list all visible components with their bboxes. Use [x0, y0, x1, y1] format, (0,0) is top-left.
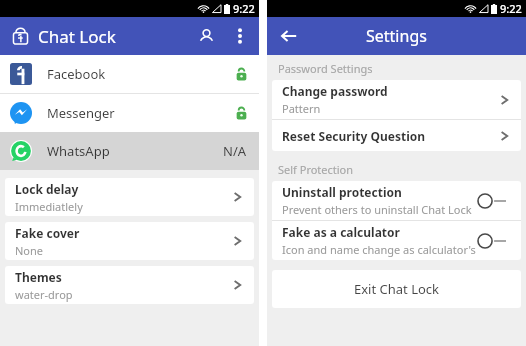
- staticText: Facebook: [47, 65, 106, 83]
- button[interactable]: Uninstall protection: [272, 181, 521, 220]
- staticText: Lock delay: [15, 181, 79, 197]
- button[interactable]: Back: [275, 22, 303, 50]
- button[interactable]: Facebook: [0, 55, 259, 93]
- button[interactable]: Exit Chat Lock: [272, 270, 521, 308]
- staticText: Immediatlely: [15, 199, 83, 214]
- staticText: Fake as a calculator: [282, 224, 400, 240]
- staticText: Uninstall protection: [282, 184, 402, 200]
- button[interactable]: Chat Lock: [9, 25, 31, 47]
- staticText: N/A: [223, 142, 247, 160]
- button[interactable]: Account: [191, 21, 221, 51]
- staticText: Settings: [366, 25, 427, 47]
- staticText: 9:22: [233, 1, 255, 16]
- button[interactable]: More options: [227, 23, 253, 49]
- button[interactable]: Fake as a calculator: [272, 221, 521, 260]
- staticText: Change password: [282, 83, 388, 99]
- staticText: Chat Lock: [38, 25, 116, 48]
- button[interactable]: WhatsApp: [0, 132, 259, 170]
- button[interactable]: Messenger: [0, 94, 259, 132]
- staticText: Icon and name change as calculator's: [282, 242, 476, 257]
- staticText: 9:22: [500, 1, 522, 16]
- button[interactable]: Toggle Fake as a calculator: [477, 230, 511, 252]
- staticText: Exit Chat Lock: [354, 280, 440, 298]
- staticText: WhatsApp: [47, 142, 110, 160]
- button[interactable]: Lock delay: [5, 178, 254, 216]
- button[interactable]: Change password: [272, 80, 521, 119]
- staticText: Password Settings: [278, 61, 373, 76]
- staticText: Messenger: [47, 104, 115, 122]
- staticText: Fake cover: [15, 225, 80, 241]
- button[interactable]: Reset Security Question: [272, 120, 521, 151]
- staticText: Self Protection: [278, 162, 354, 177]
- button[interactable]: Themes: [5, 266, 254, 304]
- button[interactable]: Toggle Uninstall protection: [477, 190, 511, 212]
- staticText: water-drop: [15, 287, 73, 302]
- button[interactable]: Fake cover: [5, 222, 254, 260]
- staticText: Prevent others to uninstall Chat Lock: [282, 202, 472, 217]
- staticText: Reset Security Question: [282, 128, 500, 144]
- staticText: None: [15, 243, 44, 258]
- staticText: Themes: [15, 269, 62, 285]
- staticText: Pattern: [282, 101, 321, 116]
